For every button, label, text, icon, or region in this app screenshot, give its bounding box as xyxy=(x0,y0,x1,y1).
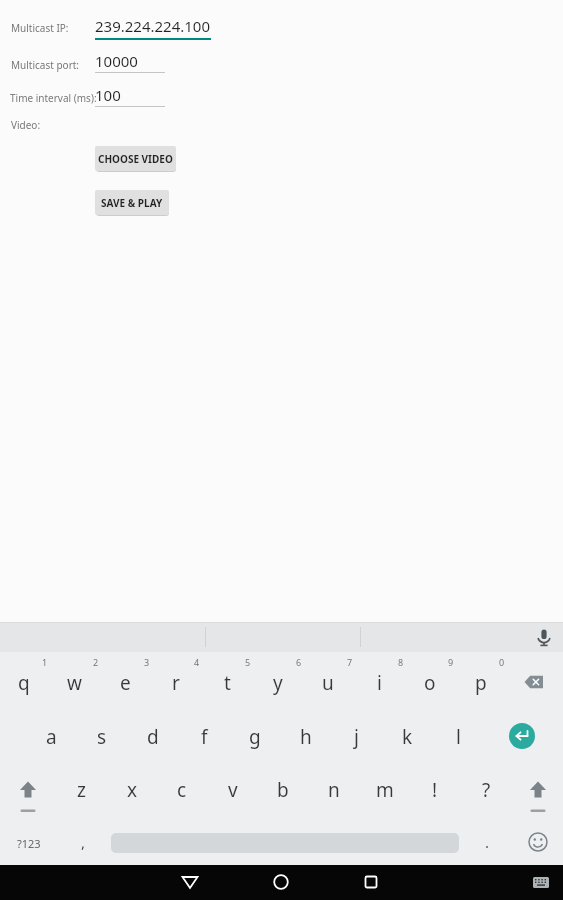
button[interactable]: q xyxy=(0,658,48,708)
staticText: g xyxy=(249,724,261,750)
button[interactable]: ?123 xyxy=(6,828,52,858)
button[interactable]: k xyxy=(383,712,431,762)
staticText: i xyxy=(377,670,382,696)
staticText: 5 xyxy=(245,656,251,668)
button[interactable]: 100 xyxy=(95,84,165,106)
staticText: CHOOSE VIDEO xyxy=(98,152,173,166)
button[interactable]: f xyxy=(180,712,228,762)
button[interactable]: a xyxy=(27,712,75,762)
button[interactable]: c xyxy=(158,765,206,815)
button[interactable]: y xyxy=(254,658,302,708)
staticText: 1 xyxy=(42,656,48,668)
staticText: . xyxy=(485,832,490,852)
button[interactable]: t xyxy=(203,658,251,708)
staticText: Time interval (ms): xyxy=(10,91,97,105)
button[interactable]: z xyxy=(57,765,105,815)
staticText: 9 xyxy=(448,656,454,668)
staticText: x xyxy=(127,777,138,803)
button[interactable]: e xyxy=(101,658,149,708)
button[interactable]: b xyxy=(259,765,307,815)
button[interactable]: CHOOSE VIDEO xyxy=(95,146,176,171)
button[interactable]: w xyxy=(50,658,98,708)
button[interactable]: d xyxy=(129,712,177,762)
button[interactable]: l xyxy=(434,712,482,762)
button[interactable]: ! xyxy=(411,765,459,815)
staticText: h xyxy=(300,724,312,750)
button[interactable]: g xyxy=(231,712,279,762)
staticText: 8 xyxy=(398,656,404,668)
button[interactable]: 239.224.224.100 xyxy=(95,12,211,40)
staticText: p xyxy=(475,670,487,696)
button[interactable]: v xyxy=(209,765,257,815)
button[interactable]: j xyxy=(332,712,380,762)
staticText: 239.224.224.100 xyxy=(95,16,211,36)
button[interactable]: x xyxy=(108,765,156,815)
staticText: b xyxy=(277,777,289,803)
staticText: ?123 xyxy=(17,836,41,851)
staticText: f xyxy=(201,724,208,750)
button[interactable] xyxy=(522,766,554,814)
button[interactable]: , xyxy=(59,817,107,867)
button[interactable] xyxy=(529,872,553,892)
staticText: 7 xyxy=(347,656,353,668)
button[interactable] xyxy=(12,766,44,814)
staticText: 4 xyxy=(194,656,200,668)
staticText: j xyxy=(354,724,359,750)
staticText: l xyxy=(456,724,461,750)
staticText: q xyxy=(18,670,30,696)
staticText: a xyxy=(46,724,57,750)
button[interactable]: . xyxy=(463,817,511,867)
button[interactable] xyxy=(520,670,548,694)
button[interactable]: SAVE & PLAY xyxy=(95,190,169,215)
button[interactable]: p xyxy=(457,658,505,708)
staticText: 3 xyxy=(144,656,150,668)
button[interactable]: m xyxy=(361,765,409,815)
staticText: 0 xyxy=(499,656,505,668)
button[interactable]: i xyxy=(355,658,403,708)
button[interactable] xyxy=(170,865,210,899)
staticText: 2 xyxy=(93,656,99,668)
staticText: , xyxy=(81,832,86,852)
staticText: t xyxy=(224,670,231,696)
button[interactable]: s xyxy=(78,712,126,762)
staticText: w xyxy=(67,670,82,696)
button[interactable]: 10000 xyxy=(95,50,165,72)
staticText: n xyxy=(328,777,340,803)
staticText: Video: xyxy=(11,118,41,132)
staticText: s xyxy=(97,724,107,750)
button[interactable] xyxy=(351,865,391,899)
button[interactable]: h xyxy=(282,712,330,762)
staticText: SAVE & PLAY xyxy=(101,196,163,210)
button[interactable] xyxy=(506,720,538,752)
staticText: r xyxy=(172,670,180,696)
staticText: v xyxy=(228,777,238,803)
staticText: ? xyxy=(482,777,491,803)
staticText: d xyxy=(147,724,159,750)
staticText: 6 xyxy=(296,656,302,668)
button[interactable]: r xyxy=(152,658,200,708)
staticText: 10000 xyxy=(95,51,138,71)
staticText: y xyxy=(273,670,283,696)
button[interactable]: u xyxy=(304,658,352,708)
staticText: c xyxy=(177,777,187,803)
staticText: o xyxy=(424,670,436,696)
staticText: ! xyxy=(432,777,438,803)
staticText: z xyxy=(77,777,86,803)
staticText: Multicast IP: xyxy=(11,21,69,35)
staticText: u xyxy=(322,670,334,696)
staticText: Multicast port: xyxy=(11,58,80,72)
staticText: k xyxy=(402,724,413,750)
staticText: m xyxy=(376,777,394,803)
button[interactable] xyxy=(261,865,301,899)
staticText: e xyxy=(120,670,131,696)
button[interactable] xyxy=(534,628,554,648)
button[interactable] xyxy=(525,829,551,855)
button[interactable]: n xyxy=(310,765,358,815)
button[interactable]: o xyxy=(406,658,454,708)
staticText: 100 xyxy=(95,85,121,105)
button[interactable]: ? xyxy=(462,765,510,815)
